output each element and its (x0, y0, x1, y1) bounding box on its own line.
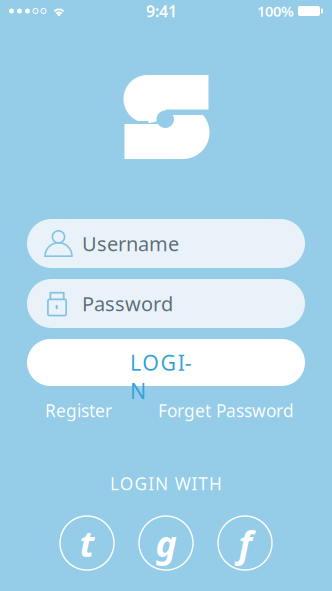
staticText: LOGIN WITH (110, 472, 222, 495)
button[interactable]: LOGIN (27, 339, 305, 386)
staticText: g (155, 519, 176, 567)
button[interactable]: Log in with Facebook (218, 516, 272, 570)
staticText: t (79, 519, 94, 567)
staticText: 9:41 (146, 0, 177, 22)
staticText: Username (82, 230, 179, 257)
staticText: LOGIN (130, 348, 202, 377)
button[interactable]: Username (27, 219, 305, 268)
button[interactable]: Password (27, 279, 305, 328)
button[interactable]: Register (45, 399, 112, 422)
button[interactable]: Log in with Twitter (60, 516, 114, 570)
button[interactable]: Forget Password (158, 399, 294, 422)
button[interactable]: Log in with Google (139, 516, 193, 570)
staticText: Forget Password (158, 399, 294, 422)
staticText: 100% (257, 1, 294, 21)
staticText: f (238, 519, 251, 567)
staticText: Password (82, 290, 173, 317)
staticText: Register (45, 399, 112, 422)
